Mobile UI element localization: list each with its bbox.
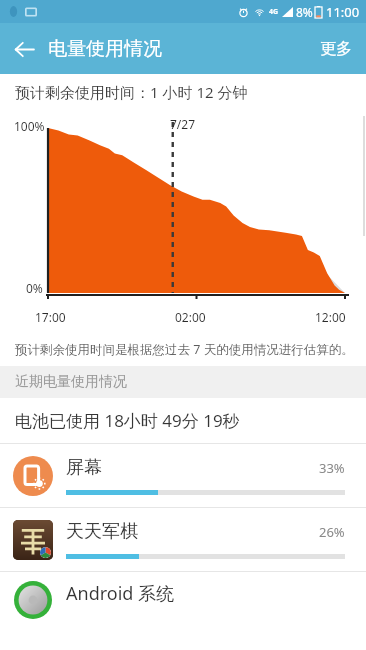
staticText: 更多: [320, 39, 352, 59]
staticText: 电量使用情况: [48, 37, 162, 61]
button[interactable]: 屏幕: [0, 444, 366, 507]
staticText: 02:00: [175, 309, 206, 325]
staticText: 100%: [14, 118, 45, 134]
button[interactable]: 天天军棋: [0, 508, 366, 571]
staticText: 17:00: [35, 309, 66, 325]
button[interactable]: 电池已使用 18小时 49分 19秒: [0, 398, 366, 443]
staticText: 电池已使用 18小时 49分 19秒: [15, 409, 240, 432]
staticText: 4G: [269, 7, 279, 17]
staticText: 26%: [319, 523, 345, 541]
staticText: 33%: [319, 459, 345, 477]
button[interactable]: 更多: [320, 23, 352, 74]
staticText: 预计剩余使用时间是根据您过去 7 天的使用情况进行估算的。: [15, 341, 354, 358]
staticText: 11:00: [326, 3, 360, 21]
staticText: 屏幕: [66, 456, 102, 479]
button[interactable]: Android 系统: [0, 572, 366, 614]
staticText: Android 系统: [66, 581, 175, 606]
staticText: 天天军棋: [66, 520, 138, 543]
button[interactable]: Back: [0, 25, 48, 73]
staticText: 8%: [296, 4, 313, 20]
staticText: 12:00: [315, 309, 346, 325]
staticText: 近期电量使用情况: [15, 373, 127, 391]
staticText: 0%: [26, 280, 43, 296]
staticText: 7/27: [170, 116, 196, 132]
staticText: 预计剩余使用时间：1 小时 12 分钟: [15, 82, 248, 102]
